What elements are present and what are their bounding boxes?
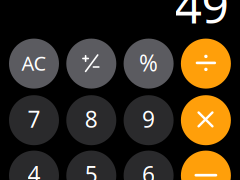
button[interactable]: 6 [95, 65, 145, 115]
button[interactable]: Subtract [95, 65, 145, 115]
staticText: AC [21, 50, 46, 76]
button[interactable]: Multiply [95, 65, 145, 115]
staticText: 7 [27, 104, 40, 134]
staticText: 9 [142, 104, 155, 134]
staticText: 8 [85, 104, 98, 134]
button[interactable]: Divide [95, 65, 145, 115]
button[interactable]: 5 [95, 65, 145, 115]
button[interactable]: 7 [95, 65, 145, 115]
staticText: % [139, 47, 158, 78]
button[interactable]: % [95, 65, 145, 115]
staticText: 5 [85, 159, 98, 180]
staticText: 4 [27, 159, 40, 180]
button[interactable]: Toggle sign [95, 65, 145, 115]
staticText: 49 [174, 0, 228, 37]
button[interactable]: 9 [95, 65, 145, 115]
button[interactable]: 8 [95, 65, 145, 115]
staticText: 6 [142, 159, 155, 180]
button[interactable]: 4 [95, 65, 145, 115]
button[interactable]: AC [95, 65, 145, 115]
